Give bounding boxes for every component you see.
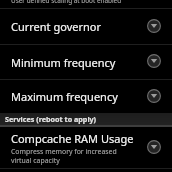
- button[interactable]: Compcache RAM Usage: [0, 127, 172, 168]
- staticText: Maximum frequency: [11, 89, 135, 104]
- staticText: Compcache RAM Usage: [11, 131, 134, 146]
- button[interactable]: Maximum frequency options: [143, 85, 165, 107]
- button[interactable]: Minimum frequency: [0, 45, 172, 79]
- staticText: Current governor: [11, 19, 135, 34]
- button[interactable]: Compcache RAM Usage options: [143, 136, 165, 158]
- button[interactable]: Current governor options: [143, 15, 165, 37]
- button[interactable]: Minimum frequency options: [143, 50, 165, 72]
- button[interactable]: Current governor: [0, 9, 172, 44]
- staticText: User defined scaling at boot enabled: [11, 0, 122, 5]
- staticText: Services (reboot to apply): [5, 114, 97, 124]
- staticText: Compress memory for increased virtual ca…: [11, 147, 117, 165]
- staticText: Minimum frequency: [11, 55, 135, 70]
- button[interactable]: Maximum frequency: [0, 80, 172, 113]
